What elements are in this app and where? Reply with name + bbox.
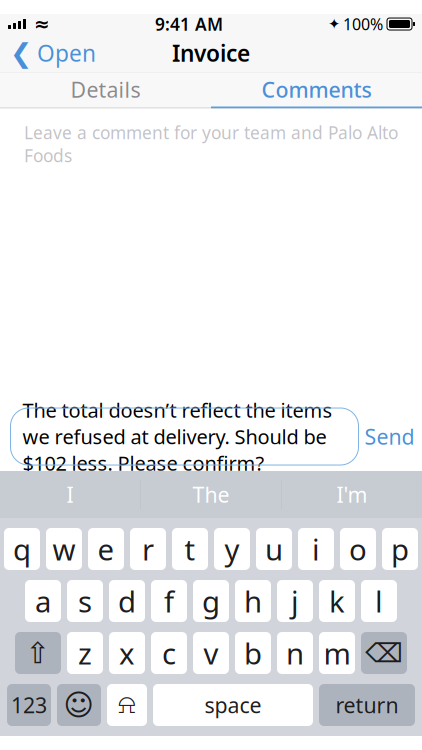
button[interactable]: j	[277, 580, 313, 622]
staticText: k	[329, 581, 345, 620]
staticText: x	[119, 633, 135, 672]
staticText: b	[244, 633, 262, 672]
staticText: The	[192, 480, 229, 509]
button[interactable]: z	[67, 632, 103, 674]
staticText: I	[66, 480, 73, 509]
staticText: f	[164, 581, 174, 620]
button[interactable]: n	[277, 632, 313, 674]
button[interactable]: Shift	[15, 632, 61, 674]
button[interactable]: f	[151, 580, 187, 622]
staticText: ⌫	[365, 638, 403, 668]
button[interactable]: g	[193, 580, 229, 622]
button[interactable]: space	[153, 684, 313, 726]
staticText: Comments	[261, 75, 371, 104]
button[interactable]: p	[382, 528, 418, 570]
button[interactable]: b	[235, 632, 271, 674]
button[interactable]: 123	[7, 684, 51, 726]
staticText: y	[224, 529, 239, 568]
button[interactable]: Emoji	[57, 684, 101, 726]
staticText: d	[118, 581, 136, 620]
button[interactable]: v	[193, 632, 229, 674]
staticText: z	[78, 633, 92, 672]
button[interactable]: k	[319, 580, 355, 622]
staticText: return	[335, 691, 398, 719]
staticText: ✦	[328, 16, 340, 32]
staticText: m	[323, 633, 350, 672]
button[interactable]: Dictation	[107, 684, 147, 726]
button[interactable]: I	[0, 471, 140, 517]
button[interactable]: return	[319, 684, 415, 726]
staticText: e	[97, 529, 114, 568]
staticText: n	[286, 633, 304, 672]
staticText: w	[52, 529, 75, 568]
button[interactable]: I'm	[282, 471, 422, 517]
staticText: ⇧	[25, 636, 50, 670]
button[interactable]: e	[88, 528, 124, 570]
button[interactable]: Delete	[361, 632, 407, 674]
button[interactable]: Send	[358, 413, 420, 459]
staticText: ❮	[10, 38, 32, 68]
staticText: v	[203, 633, 218, 672]
staticText: ⍾	[118, 692, 136, 718]
button[interactable]: a	[25, 580, 61, 622]
staticText: 9:41 AM	[155, 12, 223, 35]
button[interactable]: h	[235, 580, 271, 622]
button[interactable]: Comments	[211, 72, 422, 106]
button[interactable]: o	[340, 528, 376, 570]
staticText: a	[35, 581, 51, 620]
staticText: j	[291, 581, 299, 620]
staticText: u	[265, 529, 283, 568]
button[interactable]: s	[67, 580, 103, 622]
button[interactable]: ❮	[0, 32, 96, 74]
button[interactable]: t	[172, 528, 208, 570]
staticText: Open	[37, 38, 96, 68]
button[interactable]: x	[109, 632, 145, 674]
staticText: The total doesn’t reflect the items we r…	[22, 397, 332, 476]
button[interactable]: y	[214, 528, 250, 570]
staticText: I'm	[336, 480, 367, 509]
staticText: g	[202, 581, 220, 620]
staticText: 100%	[343, 13, 383, 35]
staticText: space	[204, 691, 261, 719]
button[interactable]: i	[298, 528, 334, 570]
button[interactable]: r	[130, 528, 166, 570]
button[interactable]: m	[319, 632, 355, 674]
staticText: ≈	[34, 13, 50, 35]
staticText: Details	[70, 75, 140, 104]
button[interactable]: The	[141, 471, 281, 517]
staticText: 123	[11, 691, 47, 719]
staticText: r	[142, 529, 154, 568]
staticText: c	[162, 633, 176, 672]
button[interactable]: q	[4, 528, 40, 570]
staticText: l	[375, 581, 383, 620]
staticText: Send	[364, 422, 414, 451]
staticText: t	[184, 529, 195, 568]
staticText: p	[391, 529, 409, 568]
staticText: Leave a comment for your team and Palo A…	[24, 121, 398, 167]
button[interactable]: u	[256, 528, 292, 570]
button[interactable]: Details	[0, 72, 211, 106]
staticText: q	[13, 529, 31, 568]
button[interactable]: c	[151, 632, 187, 674]
staticText: h	[244, 581, 262, 620]
staticText: ☺	[63, 688, 94, 722]
button[interactable]: l	[361, 580, 397, 622]
button[interactable]: w	[46, 528, 82, 570]
staticText: o	[349, 529, 367, 568]
staticText: s	[78, 581, 92, 620]
staticText: Invoice	[172, 38, 250, 68]
staticText: i	[312, 529, 320, 568]
button[interactable]: d	[109, 580, 145, 622]
